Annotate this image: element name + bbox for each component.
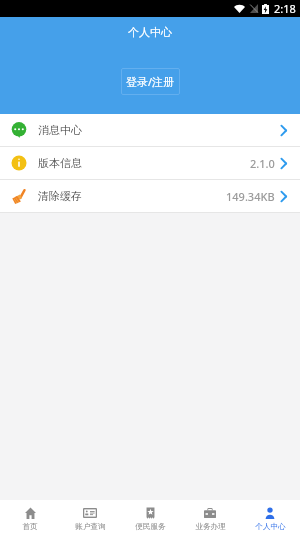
staticText: 版本信息 [38,156,82,170]
button[interactable]: 业务办理 [180,500,240,533]
button[interactable]: 登录/注册 [121,68,180,95]
staticText: 149.34KB [226,189,275,204]
staticText: 个人中心 [128,25,172,39]
button[interactable]: 账户查询 [60,500,120,533]
staticText: 个人中心 [255,522,286,532]
button[interactable]: 个人中心 [240,500,300,533]
button[interactable]: 版本信息 [0,147,300,179]
staticText: 业务办理 [195,522,226,532]
staticText: 账户查询 [75,522,106,532]
staticText: 登录/注册 [126,74,175,89]
staticText: 首页 [22,522,38,532]
staticText: 2:18 [274,1,296,16]
staticText: 消息中心 [38,123,82,137]
button[interactable]: 消息中心 [0,114,300,146]
staticText: 2.1.0 [250,156,275,171]
staticText: 便民服务 [135,522,166,532]
button[interactable]: 清除缓存 [0,180,300,212]
button[interactable]: 首页 [0,500,60,533]
button[interactable]: 便民服务 [120,500,180,533]
staticText: 清除缓存 [38,189,82,203]
